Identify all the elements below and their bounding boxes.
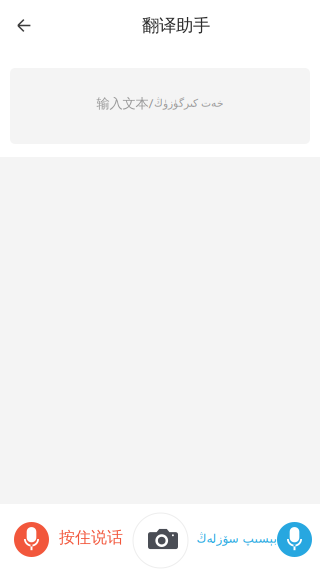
button[interactable]: بېسىپ سۆزلەڭ — [196, 513, 320, 566]
staticText: 翻译助手 — [142, 15, 210, 36]
staticText: 输入文本/ — [96, 94, 153, 112]
staticText: 按住说话 — [59, 528, 123, 547]
staticText: خەت كىرگۈزۈڭ — [153, 97, 223, 109]
button[interactable]: 输入文本/ — [10, 68, 310, 144]
staticText: بېسىپ سۆزلەڭ — [196, 532, 276, 545]
button[interactable]: 拍照翻译 — [133, 513, 188, 568]
button[interactable]: 返回 — [0, 0, 48, 51]
button[interactable]: 按住说话 — [0, 513, 129, 566]
